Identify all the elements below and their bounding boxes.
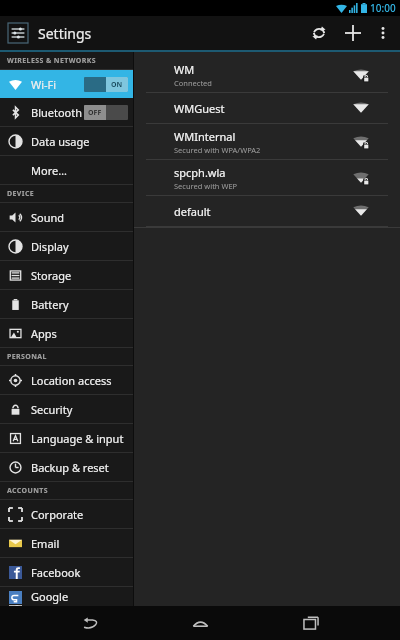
button[interactable]: Google [0,587,133,606]
button[interactable]: Battery [0,290,133,319]
staticText: WM [174,62,195,77]
button[interactable]: Recent apps [290,606,332,640]
staticText: Bluetooth [31,105,83,120]
staticText: Corporate [31,507,84,522]
button[interactable]: Home [179,606,221,640]
button[interactable]: Sound [0,203,133,232]
staticText: ON [111,80,123,90]
staticText: Backup & reset [31,460,109,475]
staticText: Secured with WPA/WPA2 [174,145,261,155]
staticText: Language & input [31,431,124,446]
staticText: DEVICE [7,189,35,199]
staticText: WMInternal [174,129,236,144]
staticText: 10:00 [370,1,396,15]
button[interactable]: Settings [7,22,29,44]
button[interactable]: Bluetooth [0,98,133,127]
button[interactable]: Storage [0,261,133,290]
staticText: Data usage [31,134,90,149]
staticText: Storage [31,268,72,283]
button[interactable]: Language & input [0,424,133,453]
staticText: Secured with WEP [174,181,238,191]
staticText: Wi-Fi [31,77,57,92]
button[interactable]: More… [0,156,133,185]
button[interactable]: WM [134,57,400,93]
staticText: Google [31,589,69,604]
staticText: PERSONAL [7,352,47,362]
button[interactable]: Backup & reset [0,453,133,482]
staticText: OFF [88,108,102,118]
staticText: Facebook [31,565,81,580]
staticText: Apps [31,326,57,341]
button[interactable]: Apps [0,319,133,348]
staticText: Display [31,239,69,254]
button[interactable]: Wi-Fi [0,70,133,98]
staticText: Settings [38,24,92,43]
button[interactable]: Back [69,606,111,640]
button[interactable]: More options [370,20,396,46]
button[interactable]: Security [0,395,133,424]
button[interactable]: WMInternal [134,124,400,160]
button[interactable]: Facebook [0,558,133,587]
staticText: WIRELESS & NETWORKS [7,56,97,66]
staticText: WMGuest [174,101,225,116]
staticText: Location access [31,373,112,388]
button[interactable]: Location access [0,366,133,395]
button[interactable]: spcph.wla [134,160,400,196]
staticText: More… [31,163,67,178]
staticText: Connected [174,78,212,88]
staticText: ACCOUNTS [7,486,49,496]
staticText: default [174,204,211,219]
button[interactable]: WMGuest [134,93,400,124]
button[interactable]: Add network [336,16,370,50]
staticText: Email [31,536,60,551]
button[interactable]: Scan [302,16,336,50]
staticText: spcph.wla [174,165,226,180]
button[interactable]: Corporate [0,500,133,529]
button[interactable]: Email [0,529,133,558]
button[interactable]: Display [0,232,133,261]
button[interactable]: default [134,196,400,227]
staticText: Sound [31,210,65,225]
staticText: Battery [31,297,69,312]
staticText: Security [31,402,73,417]
button[interactable]: Data usage [0,127,133,156]
